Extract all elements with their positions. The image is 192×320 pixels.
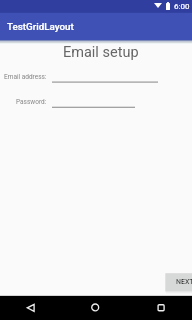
staticText: NEXT — [176, 278, 192, 286]
staticText: 6:00 — [174, 2, 190, 11]
button[interactable]: Recent apps — [151, 297, 172, 318]
button[interactable]: Back — [20, 297, 41, 318]
staticText: Password: — [16, 98, 47, 106]
staticText: Email setup — [63, 44, 139, 61]
button[interactable]: NEXT — [165, 273, 192, 292]
staticText: Email address: — [4, 73, 47, 81]
button[interactable]: Home — [85, 297, 106, 318]
staticText: TestGridLayout — [7, 21, 74, 32]
